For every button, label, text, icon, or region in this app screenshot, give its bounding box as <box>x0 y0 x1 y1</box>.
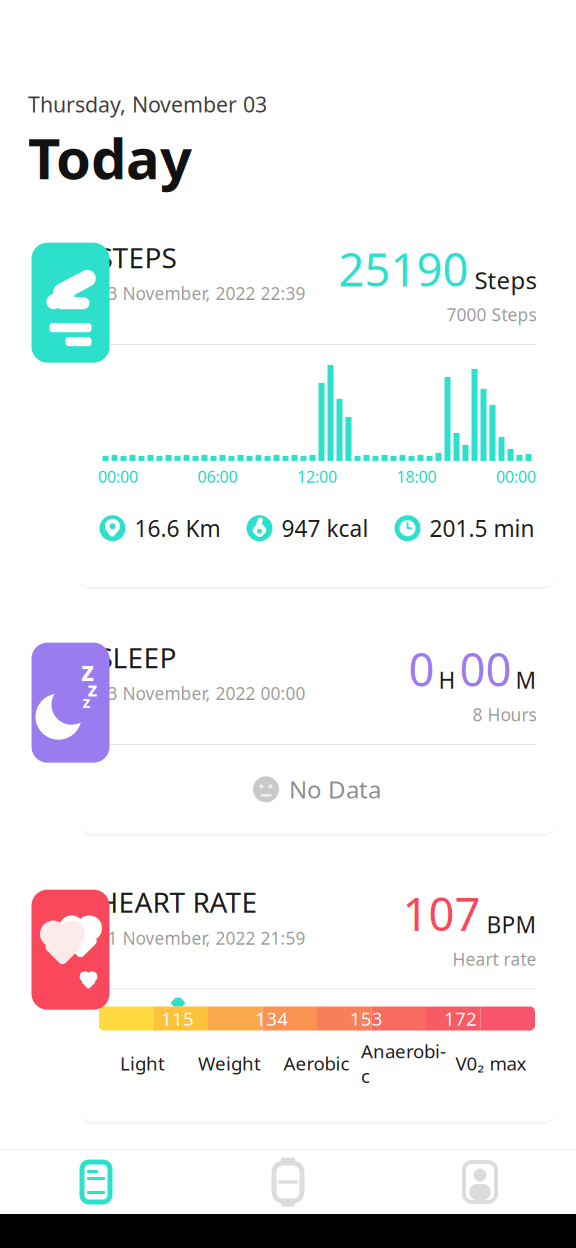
staticText: 06:00 <box>197 466 237 487</box>
staticText: z <box>82 691 90 712</box>
staticText: STEPS <box>97 239 176 276</box>
staticText: HEART RATE <box>97 883 257 920</box>
staticText: Today <box>28 120 192 195</box>
staticText: 201.5 min <box>429 513 534 543</box>
staticText: Aerobic <box>283 1051 349 1076</box>
staticText: 0 <box>408 639 434 699</box>
staticText: Light <box>120 1051 165 1076</box>
staticText: 12:00 <box>297 466 337 487</box>
staticText: 03 November, 2022 00:00 <box>97 682 305 705</box>
staticText: M <box>515 665 536 695</box>
staticText: 172 <box>444 1006 477 1031</box>
staticText: 107 <box>402 883 480 943</box>
staticText: 25190 <box>338 239 468 299</box>
staticText: 115 <box>161 1006 194 1031</box>
staticText: 01 November, 2022 21:59 <box>97 926 305 949</box>
staticText: 134 <box>255 1006 288 1031</box>
button[interactable]: SLEEP <box>73 617 560 834</box>
staticText: z <box>87 675 97 702</box>
staticText: H <box>438 665 455 695</box>
staticText: 16.6 Km <box>134 513 220 543</box>
button[interactable]: Profile <box>384 1150 576 1214</box>
staticText: BPM <box>486 909 536 939</box>
button[interactable]: Dashboard <box>0 1150 192 1214</box>
staticText: 00:00 <box>98 466 138 487</box>
staticText: SLEEP <box>97 639 176 676</box>
staticText: Steps <box>474 264 536 296</box>
staticText: Weight <box>198 1051 261 1076</box>
staticText: Thursday, November 03 <box>28 90 267 118</box>
staticText: 00 <box>459 639 511 699</box>
button[interactable]: Devices <box>192 1150 384 1214</box>
staticText: Anaerobic <box>361 1038 446 1088</box>
staticText: 03 November, 2022 22:39 <box>97 282 305 305</box>
staticText: z <box>81 653 94 688</box>
staticText: 153 <box>350 1006 383 1031</box>
staticText: No Data <box>289 773 381 805</box>
staticText: V0₂ max <box>455 1051 526 1076</box>
staticText: 7000 Steps <box>446 303 536 326</box>
staticText: 18:00 <box>396 466 436 487</box>
staticText: 00:00 <box>496 466 536 487</box>
staticText: 947 kcal <box>281 513 368 543</box>
staticText: Heart rate <box>452 947 536 970</box>
staticText: 8 Hours <box>472 703 536 726</box>
button[interactable]: STEPS <box>73 217 560 587</box>
button[interactable]: HEART RATE <box>73 864 560 1122</box>
